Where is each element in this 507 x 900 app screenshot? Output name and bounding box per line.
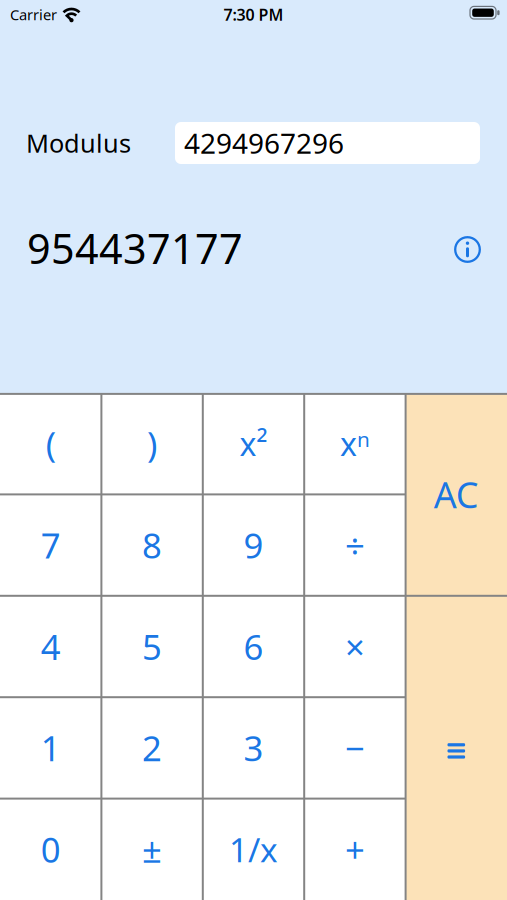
staticText: 9 <box>243 522 263 568</box>
button[interactable]: ± <box>101 799 203 900</box>
button[interactable]: 4294967296 <box>175 122 480 164</box>
staticText: 8 <box>142 522 162 568</box>
button[interactable]: ) <box>101 393 203 494</box>
button[interactable]: 9 <box>203 494 304 596</box>
staticText: ( <box>46 421 56 467</box>
staticText: 4294967296 <box>184 124 344 162</box>
staticText: x² <box>239 422 267 465</box>
button[interactable]: xⁿ <box>304 393 406 494</box>
button[interactable]: 3 <box>203 697 304 799</box>
staticText: 7:30 PM <box>223 4 283 25</box>
staticText: 5 <box>142 623 162 669</box>
button[interactable] <box>454 234 481 261</box>
staticText: ÷ <box>345 522 365 568</box>
staticText: 4 <box>41 623 61 669</box>
staticText: 1/x <box>229 827 278 871</box>
button[interactable]: 8 <box>101 494 203 596</box>
staticText: × <box>345 623 365 669</box>
staticText: 0 <box>41 826 61 872</box>
staticText: + <box>345 826 365 872</box>
button[interactable]: 6 <box>203 596 304 697</box>
button[interactable]: 4 <box>0 596 101 697</box>
button[interactable]: 0 <box>0 799 101 900</box>
staticText: 3 <box>243 725 263 771</box>
staticText: Modulus <box>26 126 131 160</box>
staticText: 954437177 <box>27 221 243 275</box>
staticText: − <box>345 725 365 771</box>
button[interactable]: 1 <box>0 697 101 799</box>
staticText: ) <box>147 421 157 467</box>
staticText: 2 <box>142 725 162 771</box>
button[interactable]: x² <box>203 393 304 494</box>
button[interactable]: + <box>304 799 406 900</box>
button[interactable]: − <box>304 697 406 799</box>
button[interactable]: 7 <box>0 494 101 596</box>
button[interactable]: 2 <box>101 697 203 799</box>
button[interactable]: × <box>304 596 406 697</box>
staticText: AC <box>434 470 479 518</box>
staticText: 6 <box>243 623 263 669</box>
staticText: xⁿ <box>340 422 370 465</box>
staticText: 1 <box>41 725 61 771</box>
staticText: 7 <box>41 522 61 568</box>
staticText: Carrier <box>10 5 57 24</box>
button[interactable] <box>406 596 507 900</box>
button[interactable]: 1/x <box>203 799 304 900</box>
button[interactable]: AC <box>406 393 507 596</box>
button[interactable]: ( <box>0 393 101 494</box>
staticText: ± <box>142 826 162 872</box>
button[interactable]: 5 <box>101 596 203 697</box>
button[interactable]: ÷ <box>304 494 406 596</box>
